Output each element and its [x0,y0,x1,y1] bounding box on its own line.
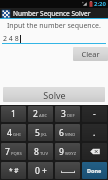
staticText: 4 [7,127,12,139]
staticText: WXYZ [65,151,77,157]
staticText: MNO [65,132,76,138]
staticText: - [93,108,96,120]
staticText: 2 [33,108,38,120]
button[interactable]: Delete [82,143,107,160]
staticText: * # [9,166,19,175]
button[interactable]: 7 [1,143,26,160]
button[interactable]: 0 + [28,162,53,179]
staticText: 2:20 [94,0,106,8]
staticText: Solve [43,89,66,101]
button[interactable]: Space [55,162,80,179]
staticText: Clear [81,49,100,59]
staticText: Input the number sequence. [7,21,101,31]
staticText: TUV [40,151,48,157]
staticText: Number Sequence Solver [13,9,91,18]
staticText: 8 [34,146,39,158]
staticText: PQRS [11,151,22,157]
button[interactable]: 1 [1,106,26,122]
staticText: 5 [35,127,40,139]
button[interactable]: Clear [73,47,108,61]
button[interactable]: 3 [55,106,80,122]
staticText: 2 4 8 [3,34,19,44]
staticText: 0 + [35,165,47,177]
button[interactable]: 5 [28,124,53,141]
button[interactable]: * # [1,162,26,179]
staticText: DEF [67,113,75,119]
button[interactable]: 9 [55,143,80,160]
button[interactable]: 4 [1,124,26,141]
staticText: JKL [41,132,47,138]
staticText: 3 [61,108,66,120]
button[interactable]: . [82,124,107,141]
staticText: 9 [59,146,64,158]
staticText: 1 [11,108,16,120]
button[interactable]: - [82,106,107,122]
button[interactable]: 2 4 8 [2,33,106,44]
button[interactable]: Done [82,162,107,179]
staticText: GHI [13,132,21,138]
button[interactable]: Solve [3,87,105,102]
button[interactable]: 2 [28,106,53,122]
staticText: ABC [39,113,48,119]
staticText: . [93,127,96,139]
staticText: Done [87,167,102,174]
button[interactable]: 8 [28,143,53,160]
staticText: 6 [59,127,64,139]
staticText: 7 [5,146,10,158]
button[interactable]: 6 [55,124,80,141]
